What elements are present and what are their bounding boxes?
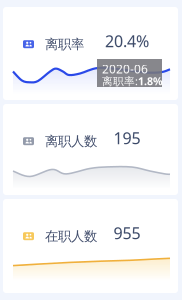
staticText: 955 bbox=[113, 222, 140, 244]
staticText: 离职率 bbox=[45, 36, 84, 52]
staticText: 2020-06 bbox=[102, 61, 148, 77]
staticText: 1.8% bbox=[138, 74, 163, 88]
staticText: 20.4% bbox=[105, 30, 149, 52]
staticText: 离职率: bbox=[102, 74, 138, 88]
staticText: 195 bbox=[113, 127, 140, 149]
staticText: 离职人数 bbox=[45, 133, 97, 149]
staticText: 在职人数 bbox=[45, 228, 97, 244]
